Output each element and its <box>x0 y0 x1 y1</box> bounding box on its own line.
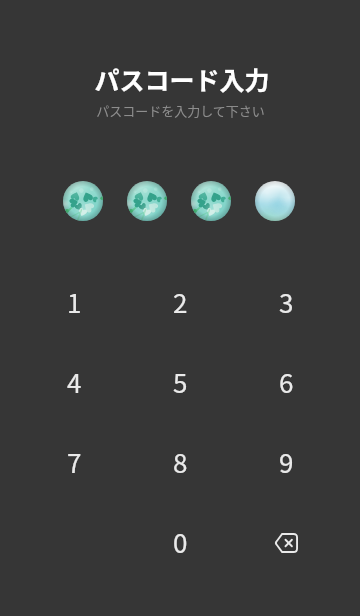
button[interactable]: 8 <box>127 422 233 502</box>
staticText: 4 <box>67 363 82 401</box>
button[interactable]: 7 <box>21 422 127 502</box>
staticText: 1 <box>67 283 82 321</box>
staticText: パスコード入力 <box>94 61 270 97</box>
staticText: 0 <box>173 523 188 561</box>
staticText: 2 <box>173 283 188 321</box>
button[interactable]: 9 <box>233 422 339 502</box>
button[interactable]: 1 <box>21 262 127 342</box>
button[interactable]: 0 <box>127 502 233 582</box>
button[interactable]: 3 <box>233 262 339 342</box>
staticText: パスコードを入力して下さい <box>96 101 265 120</box>
button[interactable]: 2 <box>127 262 233 342</box>
button[interactable]: 5 <box>127 342 233 422</box>
staticText: 8 <box>173 443 188 481</box>
staticText: 6 <box>279 363 294 401</box>
button[interactable]: Backspace <box>233 502 339 582</box>
button[interactable]: 6 <box>233 342 339 422</box>
staticText: 5 <box>173 363 188 401</box>
staticText: 7 <box>67 443 82 481</box>
button[interactable]: 4 <box>21 342 127 422</box>
staticText: 3 <box>279 283 294 321</box>
staticText: 9 <box>279 443 294 481</box>
